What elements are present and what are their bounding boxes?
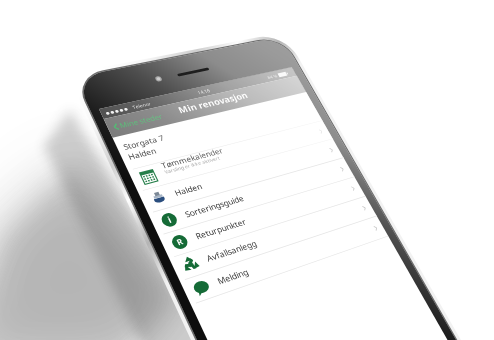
- button[interactable]: Min renovasjon app screenshot: [0, 0, 494, 340]
